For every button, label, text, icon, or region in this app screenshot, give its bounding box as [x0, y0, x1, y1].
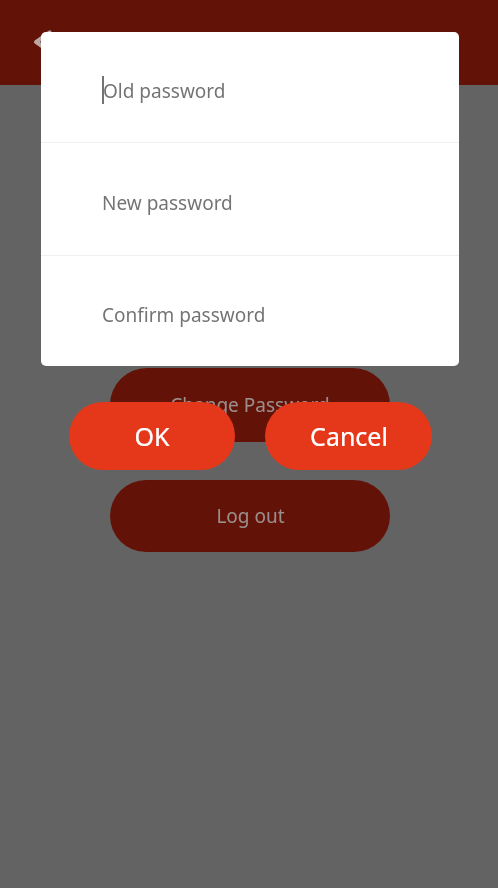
button[interactable]: OK [69, 402, 235, 470]
button[interactable]: Log out [110, 480, 390, 552]
button[interactable]: Back [18, 18, 66, 66]
staticText: Confirm password [102, 302, 266, 328]
staticText: Old password [103, 78, 226, 104]
button[interactable]: Cancel [265, 402, 432, 470]
staticText: OK [134, 419, 170, 453]
button[interactable]: Old password [41, 32, 459, 142]
button[interactable]: New password [41, 143, 459, 255]
staticText: Cancel [310, 419, 388, 453]
button[interactable]: Confirm password [41, 256, 459, 366]
staticText: New password [102, 190, 233, 216]
staticText: Change Password [170, 392, 330, 418]
staticText: Log out [216, 503, 285, 529]
button[interactable]: Change Password [110, 368, 390, 442]
